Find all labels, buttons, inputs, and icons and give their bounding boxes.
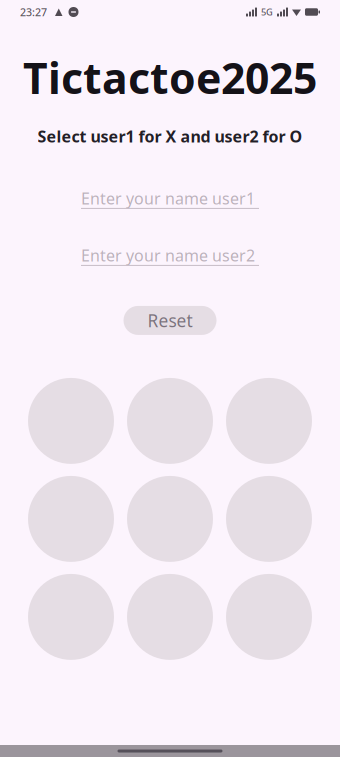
button[interactable]: Enter your name user2 <box>81 246 259 266</box>
button[interactable]: Enter your name user1 <box>81 189 259 209</box>
staticText: Reset <box>147 309 192 332</box>
button[interactable]: Empty board cell <box>127 574 213 660</box>
staticText: Enter your name user2 <box>81 245 255 266</box>
staticText: Tictactoe2025 <box>23 49 317 106</box>
button[interactable]: Empty board cell <box>28 476 114 562</box>
button[interactable]: Reset <box>123 306 216 335</box>
button[interactable]: Empty board cell <box>127 378 213 464</box>
button[interactable]: Empty board cell <box>127 476 213 562</box>
button[interactable]: Empty board cell <box>226 574 312 660</box>
button[interactable]: Empty board cell <box>28 378 114 464</box>
staticText: Enter your name user1 <box>81 188 255 209</box>
button[interactable]: Empty board cell <box>226 378 312 464</box>
staticText: Select user1 for X and user2 for O <box>37 126 302 147</box>
staticText: 5G <box>261 6 273 18</box>
button[interactable]: Empty board cell <box>28 574 114 660</box>
staticText: 23:27 <box>20 5 47 19</box>
button[interactable]: Empty board cell <box>226 476 312 562</box>
